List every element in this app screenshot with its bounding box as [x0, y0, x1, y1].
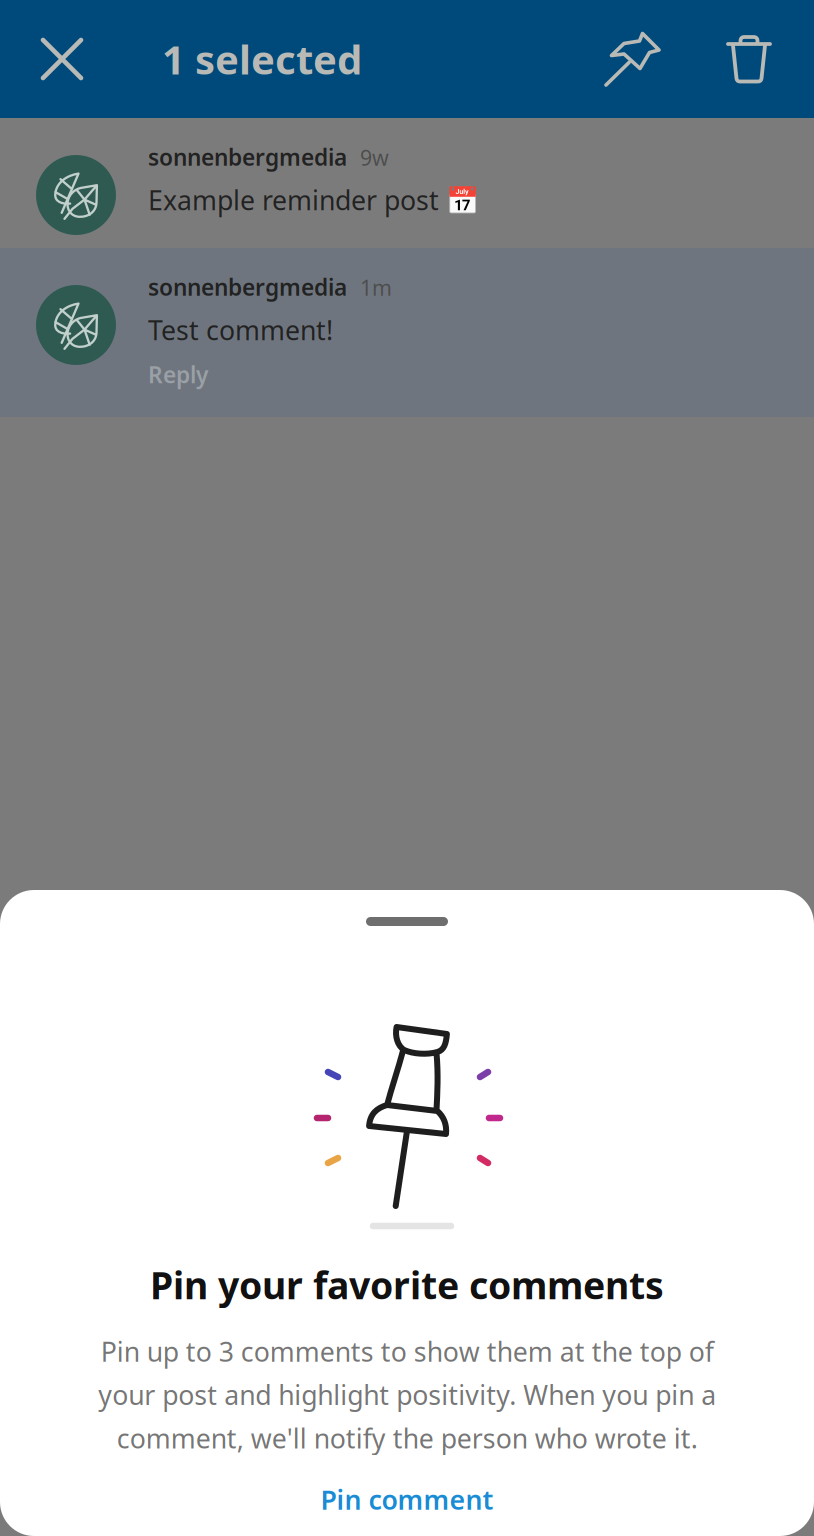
staticText: Reply: [148, 359, 208, 390]
staticText: Test comment!: [148, 312, 333, 347]
staticText: sonnenbergmedia: [148, 142, 347, 172]
button[interactable]: Pin comment: [0, 1468, 814, 1531]
staticText: Example reminder post 📅: [148, 182, 479, 217]
staticText: Pin comment: [320, 1482, 493, 1517]
staticText: Pin up to 3 comments to show them at the…: [98, 1334, 716, 1456]
button[interactable]: Delete: [684, 0, 814, 118]
staticText: sonnenbergmedia: [148, 272, 347, 302]
button[interactable]: Close: [0, 0, 124, 118]
button[interactable]: Pin: [580, 0, 684, 118]
staticText: 9w: [360, 143, 389, 172]
button[interactable]: sonnenbergmedia: [0, 248, 814, 417]
staticText: 1m: [360, 273, 392, 302]
staticText: 1 selected: [162, 32, 362, 85]
button[interactable]: sonnenbergmedia: [0, 118, 814, 248]
staticText: Pin your favorite comments: [150, 1260, 664, 1310]
